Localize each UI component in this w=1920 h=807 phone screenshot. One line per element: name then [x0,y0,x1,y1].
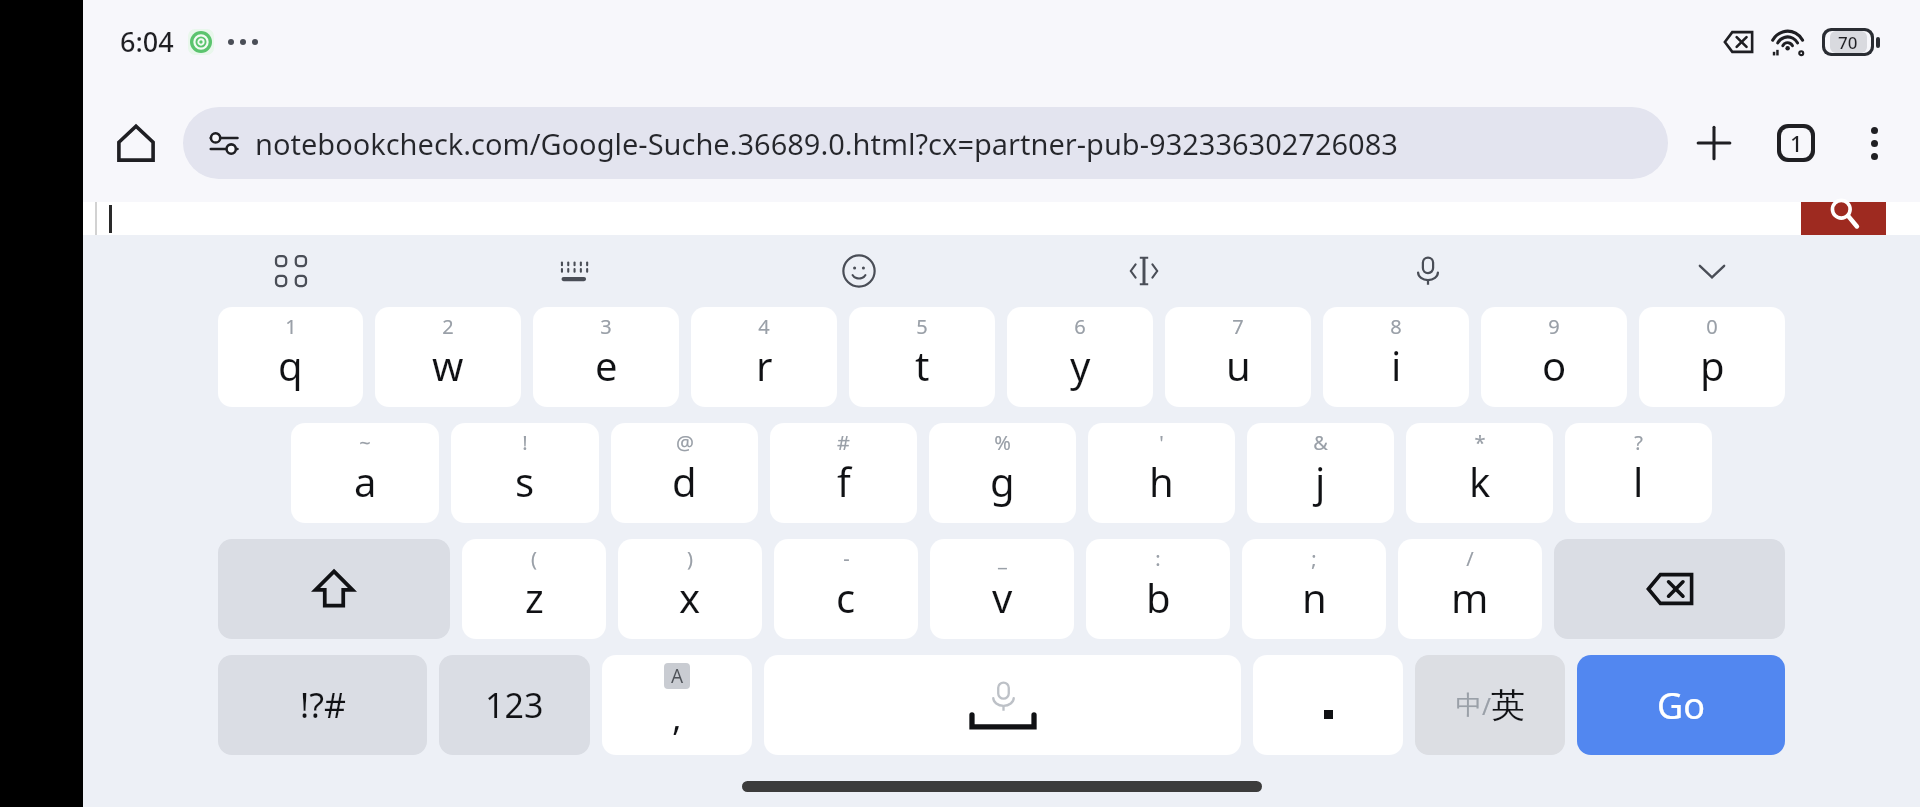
button[interactable]: Tabs [1764,111,1828,175]
staticText: 1 [1790,128,1803,158]
staticText: notebookcheck.com/Google-Suche.36689.0.h… [255,124,1398,163]
staticText: 9 [1548,313,1560,340]
staticText: l [1633,454,1644,508]
staticText: h [1149,454,1174,508]
staticText: z [525,570,544,624]
button[interactable]: % [929,423,1076,523]
staticText: 8 [1390,313,1402,340]
button[interactable]: & [1247,423,1394,523]
staticText: ; [1311,545,1317,572]
staticText: _ [998,545,1007,572]
button[interactable]: Emoji [826,238,892,304]
staticText: n [1302,570,1327,624]
staticText: c [836,570,856,624]
button[interactable]: @ [611,423,758,523]
button[interactable]: Hide keyboard [1679,238,1745,304]
staticText: - [843,545,850,572]
button[interactable]: _ [930,539,1074,639]
staticText: 6:04 [120,23,174,60]
button[interactable]: / [1398,539,1542,639]
button[interactable]: Space [764,655,1241,755]
button[interactable]: 123 [439,655,590,755]
staticText: Go [1657,681,1705,730]
button[interactable]: 8 [1323,307,1469,407]
staticText: % [994,429,1011,456]
button[interactable]: 9 [1481,307,1627,407]
staticText: w [432,338,464,392]
button[interactable]: ! [451,423,599,523]
staticText: y [1070,338,1091,392]
staticText: !?# [300,682,346,728]
staticText: 中 [1456,689,1482,722]
staticText: 0 [1706,313,1718,340]
staticText: t [915,338,930,392]
staticText: 2 [442,313,454,340]
button[interactable]: Voice input [1395,238,1461,304]
button[interactable]: notebookcheck.com/Google-Suche.36689.0.h… [183,107,1668,179]
button[interactable]: 0 [1639,307,1785,407]
button[interactable]: New tab [1682,111,1746,175]
staticText: : [1155,545,1161,572]
button[interactable]: Period [1253,655,1403,755]
staticText: i [1391,338,1402,392]
staticText: e [595,338,618,392]
button[interactable]: !?# [218,655,427,755]
button[interactable]: Search [1801,202,1886,235]
button[interactable]: 3 [533,307,679,407]
button[interactable]: # [770,423,917,523]
staticText: j [1315,454,1326,508]
button[interactable]: Apps [258,238,324,304]
button[interactable]: : [1086,539,1230,639]
staticText: 英 [1491,684,1525,727]
staticText: & [1313,429,1328,456]
staticText: ? [1634,429,1643,456]
button[interactable]: ; [1242,539,1386,639]
button[interactable]: Shift [218,539,450,639]
button[interactable]: * [1406,423,1553,523]
staticText: 4 [758,313,770,340]
button[interactable]: Keyboard layout [542,238,608,304]
button[interactable]: ) [618,539,762,639]
staticText: ) [687,545,693,572]
staticText: @ [676,429,694,456]
button[interactable]: More options [1844,113,1904,173]
button[interactable]: 7 [1165,307,1311,407]
button[interactable]: 5 [849,307,995,407]
staticText: f [837,454,851,508]
staticText: 1 [285,313,297,340]
staticText: r [756,338,773,392]
button[interactable]: Text editing [1111,238,1177,304]
staticText: 3 [600,313,612,340]
button[interactable]: ~ [291,423,439,523]
staticText: o [1542,338,1567,392]
staticText: 5 [916,313,928,340]
button[interactable]: 4 [691,307,837,407]
button[interactable]: ( [462,539,606,639]
button[interactable]: - [774,539,918,639]
staticText: 7 [1232,313,1244,340]
button[interactable]: 1 [218,307,363,407]
staticText: q [278,338,303,392]
staticText: u [1226,338,1251,392]
staticText: 123 [485,682,544,728]
button[interactable]: ' [1088,423,1235,523]
button[interactable]: 6 [1007,307,1153,407]
button[interactable]: Go [1577,655,1785,755]
staticText: / [1466,545,1474,572]
button[interactable]: A [602,655,752,755]
button[interactable]: 中 [1415,655,1565,755]
button[interactable] [83,202,1801,235]
staticText: A [671,663,684,689]
staticText: p [1700,338,1725,392]
button[interactable]: ? [1565,423,1712,523]
staticText: ! [522,429,528,456]
staticText: ' [1159,429,1164,456]
button[interactable]: Backspace [1554,539,1785,639]
staticText: x [679,570,701,624]
staticText: * [1474,429,1486,456]
button[interactable]: 2 [375,307,521,407]
staticText: / [1482,689,1491,722]
button[interactable]: Home [99,106,173,180]
staticText: k [1469,454,1491,508]
staticText: # [837,429,850,456]
